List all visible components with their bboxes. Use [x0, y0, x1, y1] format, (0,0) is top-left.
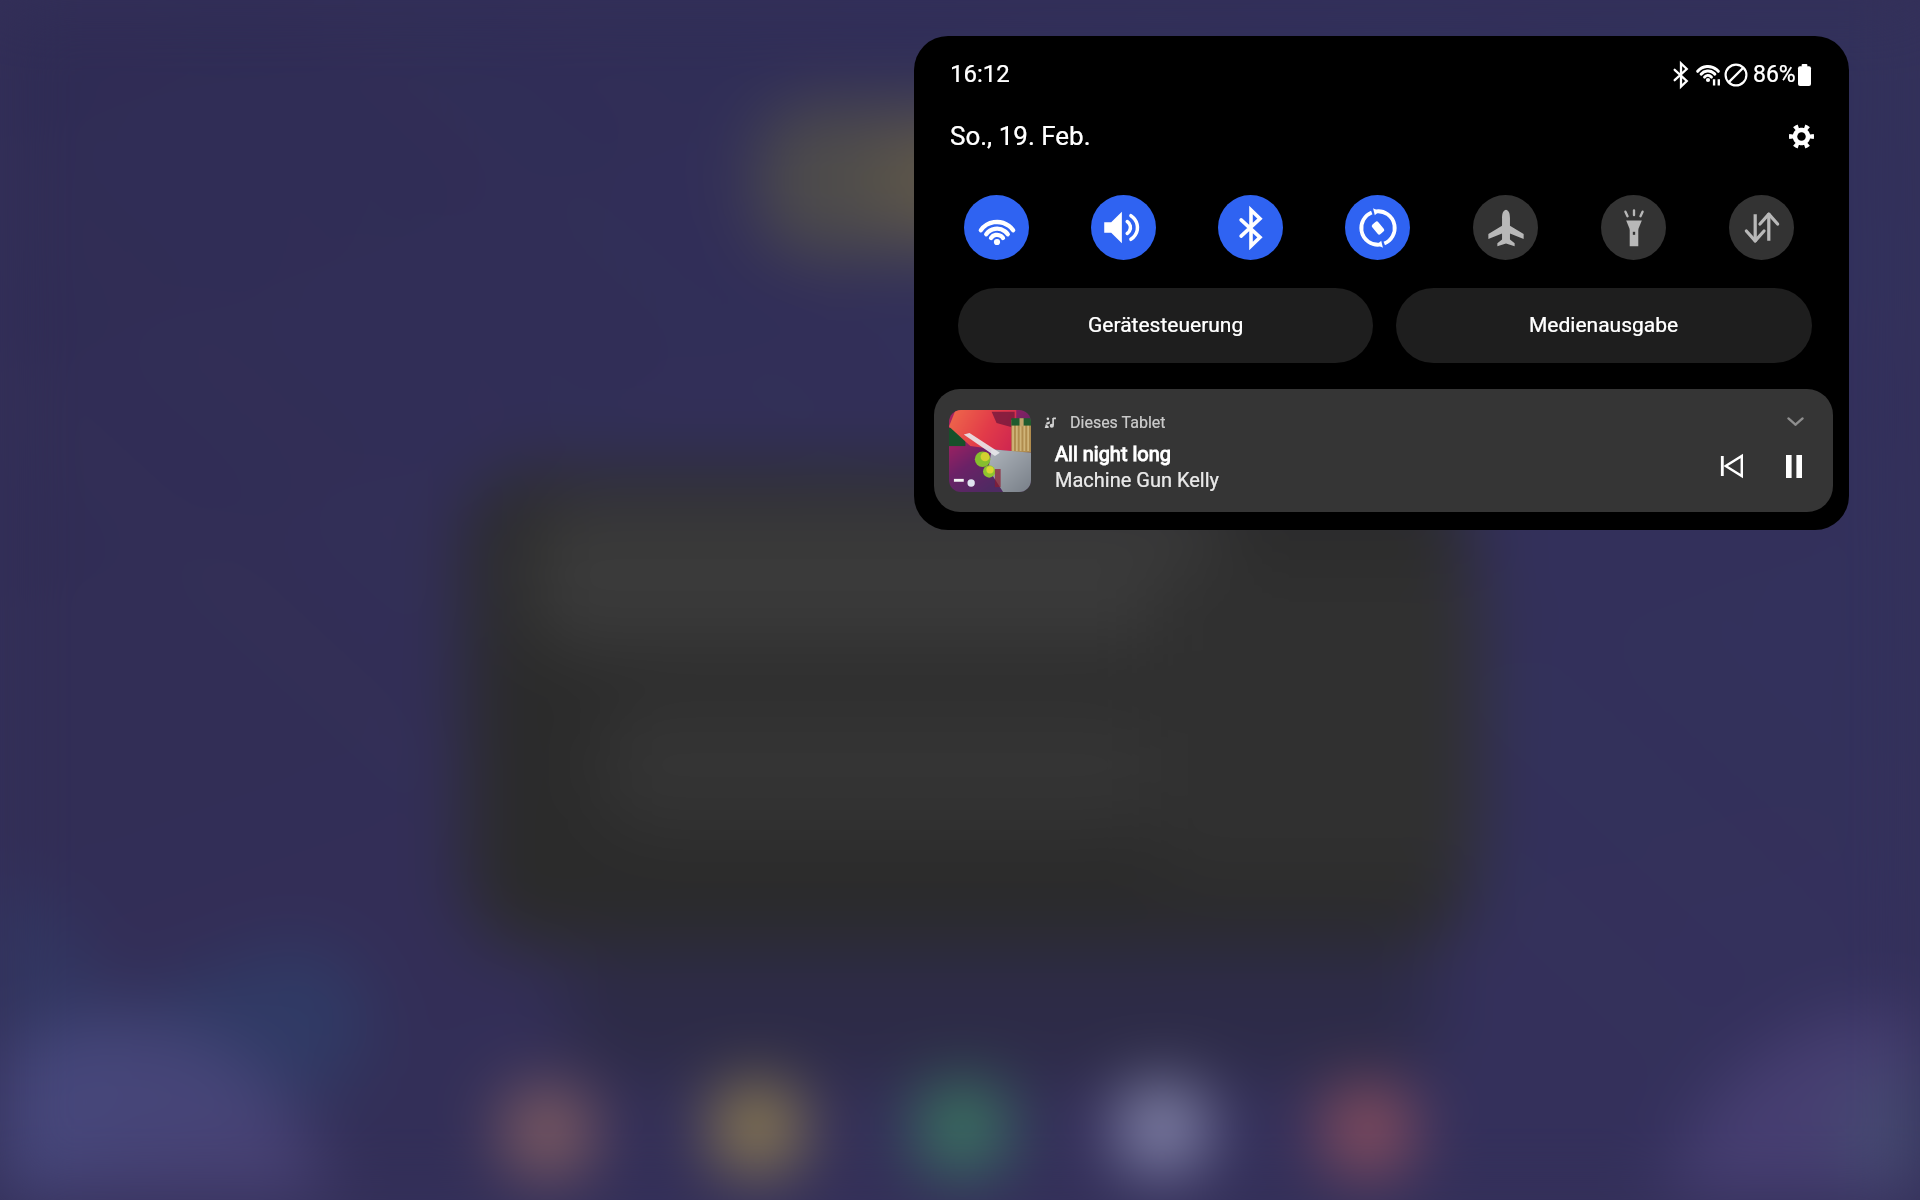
staticText: Gerätesteuerung: [1088, 313, 1244, 338]
staticText: So., 19. Feb.: [950, 121, 1091, 151]
button[interactable]: Auto-rotate: [1345, 195, 1410, 260]
button[interactable]: Medienausgabe: [1396, 288, 1812, 363]
button[interactable]: Gerätesteuerung: [958, 288, 1373, 363]
button[interactable]: Wi-Fi: [964, 195, 1029, 260]
button[interactable]: Bluetooth: [1218, 195, 1283, 260]
staticText: 16:12: [950, 60, 1010, 88]
button[interactable]: Mobile data: [1729, 195, 1794, 260]
staticText: Dieses Tablet: [1070, 413, 1166, 432]
staticText: 86%: [1753, 61, 1796, 88]
button[interactable]: Previous track: [1705, 440, 1757, 492]
button[interactable]: Airplane mode: [1473, 195, 1538, 260]
button[interactable]: Dieses Tablet: [934, 389, 1833, 512]
button[interactable]: Settings: [1777, 112, 1825, 160]
staticText: All night long: [1055, 442, 1171, 465]
button[interactable]: Sound: [1091, 195, 1156, 260]
button[interactable]: Pause: [1768, 440, 1820, 492]
staticText: Machine Gun Kelly: [1055, 468, 1220, 491]
staticText: Medienausgabe: [1529, 313, 1679, 338]
button[interactable]: Flashlight: [1601, 195, 1666, 260]
button[interactable]: Expand: [1776, 402, 1814, 440]
